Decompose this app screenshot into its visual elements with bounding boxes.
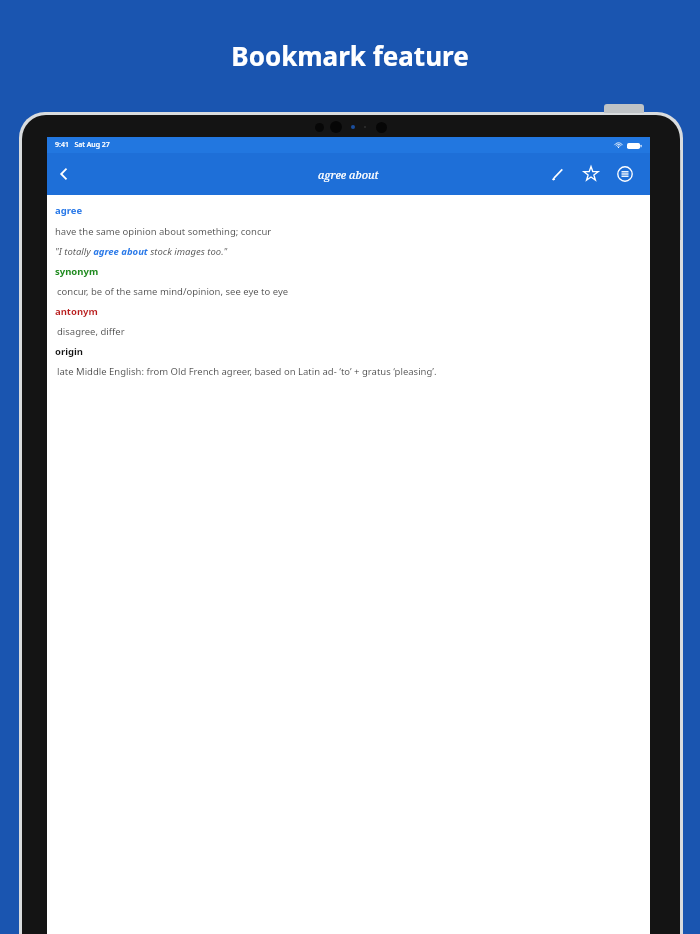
staticText: agree about: [318, 167, 379, 182]
button[interactable]: Back: [47, 157, 81, 191]
staticText: origin: [55, 345, 84, 358]
staticText: agree: [55, 204, 83, 217]
staticText: have the same opinion about something; c…: [55, 225, 272, 238]
button[interactable]: Menu: [610, 159, 640, 189]
staticText: concur, be of the same mind/opinion, see…: [57, 285, 289, 298]
staticText: 9:41 Sat Aug 27: [55, 140, 110, 150]
staticText: synonym: [55, 265, 99, 278]
staticText: Bookmark feature: [0, 38, 700, 73]
staticText: antonym: [55, 305, 98, 318]
staticText: late Middle English: from Old French agr…: [57, 365, 437, 378]
button[interactable]: Bookmark: [576, 159, 606, 189]
staticText: disagree, differ: [57, 325, 125, 338]
staticText: "I totally agree about stock images too.…: [55, 245, 228, 258]
button[interactable]: Edit: [542, 159, 572, 189]
